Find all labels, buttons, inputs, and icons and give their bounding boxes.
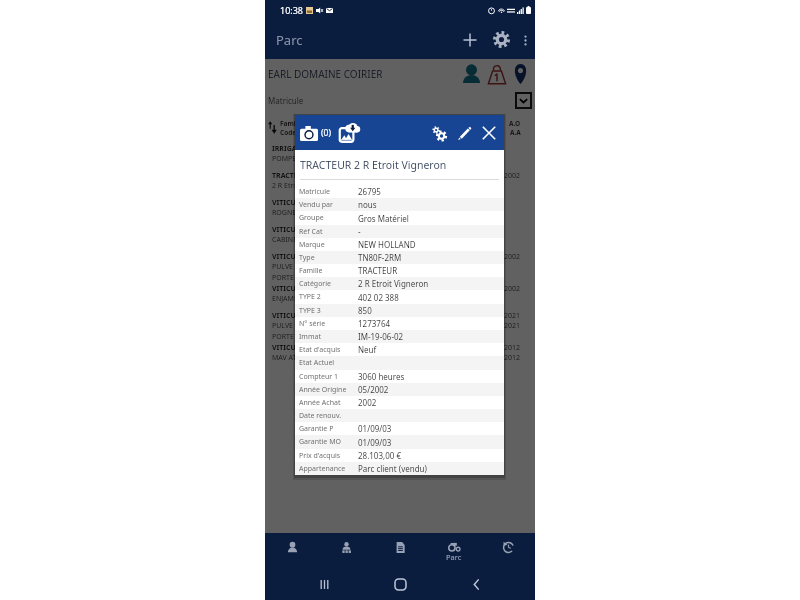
staticText: ROGNEUSE xyxy=(272,208,309,218)
button[interactable]: Client xyxy=(461,63,482,85)
staticText: Appartenance xyxy=(299,464,358,474)
button[interactable]: Back xyxy=(463,571,489,597)
staticText: Parc xyxy=(276,31,303,49)
staticText: NEW HOLLAND xyxy=(358,239,416,250)
staticText: Etat Actuel xyxy=(299,358,358,368)
staticText: IRRIGATION xyxy=(272,144,315,154)
staticText: Parc xyxy=(446,552,462,562)
button[interactable]: Equipe xyxy=(319,533,373,568)
staticText: Matricule xyxy=(299,187,358,197)
button[interactable]: Documents xyxy=(373,533,427,568)
staticText: TYPE 3 xyxy=(299,306,358,316)
staticText: TRACTEUR xyxy=(358,265,398,276)
button[interactable]: Clients xyxy=(265,533,319,568)
staticText: N° série xyxy=(299,319,358,329)
staticText: 01/09/03 xyxy=(358,437,392,448)
staticText: 2002 xyxy=(504,284,521,294)
staticText: Famille xyxy=(299,266,358,276)
staticText: Garantie P xyxy=(299,424,358,434)
button[interactable]: VITICULTURE xyxy=(272,251,521,283)
staticText: VITICULTURE xyxy=(272,311,318,321)
button[interactable]: Expand xyxy=(515,92,532,109)
button[interactable]: Close xyxy=(478,122,500,144)
staticText: Compteur 1 xyxy=(299,372,358,382)
staticText: 10:38 xyxy=(280,4,304,16)
button[interactable]: More options xyxy=(515,30,535,50)
staticText: Code xyxy=(280,128,297,137)
staticText: Matricule xyxy=(268,95,304,106)
staticText: Date renouv. xyxy=(299,411,358,421)
staticText: TN80F-2RM xyxy=(358,252,402,263)
staticText: Garantie MO xyxy=(299,437,358,447)
button[interactable]: Home xyxy=(387,571,413,597)
staticText: 850 xyxy=(358,305,372,316)
staticText: 28.103,00 € xyxy=(358,450,401,461)
staticText: 26795 xyxy=(358,186,381,197)
staticText: MAV ATT xyxy=(272,353,301,363)
staticText: Année Achat xyxy=(299,398,358,408)
staticText: nous xyxy=(358,199,377,210)
staticText: PULVE PORTE xyxy=(272,321,294,341)
button[interactable]: Recents xyxy=(311,571,337,597)
button[interactable]: Take photo xyxy=(299,123,319,143)
staticText: Neuf xyxy=(358,344,377,355)
staticText: 2021 xyxy=(504,311,521,321)
staticText: A.O xyxy=(509,119,521,128)
button[interactable]: Add xyxy=(456,26,483,53)
button[interactable]: Settings xyxy=(428,122,450,144)
staticText: Type xyxy=(299,253,358,263)
staticText: VITICULTURE xyxy=(272,252,318,262)
staticText: - xyxy=(358,226,361,237)
staticText: 1273764 xyxy=(358,318,391,329)
staticText: PULVE PORTE xyxy=(272,262,294,282)
staticText: 2 R Etroit Vigneron xyxy=(358,278,429,289)
staticText: (0) xyxy=(321,127,331,139)
staticText: VITICULTURE xyxy=(272,343,318,353)
staticText: 3060 heures xyxy=(358,371,405,382)
staticText: TRACTEUR xyxy=(272,171,308,181)
staticText: EARL DOMAINE COIRIER xyxy=(268,67,383,81)
button[interactable]: Import photo xyxy=(337,121,361,145)
staticText: 2002 xyxy=(358,397,377,408)
staticText: IM-19-06-02 xyxy=(358,331,404,342)
staticText: Gros Matériel xyxy=(358,213,409,224)
button[interactable]: VITICULTURE xyxy=(272,224,521,251)
button[interactable]: Historique xyxy=(481,533,535,568)
button[interactable]: Alerts xyxy=(486,63,507,85)
staticText: TRACTEUR 2 R Etroit Vigneron xyxy=(300,158,447,172)
staticText: VITICULTURE xyxy=(272,284,318,294)
staticText: Prix d'acquis xyxy=(299,451,358,461)
staticText: TYPE 2 xyxy=(299,292,358,302)
button[interactable]: Edit xyxy=(453,122,475,144)
staticText: Marque xyxy=(299,240,358,250)
button[interactable]: Settings xyxy=(488,26,515,53)
button[interactable]: VITICULTURE xyxy=(272,197,521,224)
staticText: CABINE xyxy=(272,235,298,245)
staticText: Réf Cat xyxy=(299,227,358,237)
staticText: Groupe xyxy=(299,213,358,223)
staticText: 2021 xyxy=(504,321,521,331)
button[interactable]: Location xyxy=(511,63,529,85)
staticText: POMPE xyxy=(272,154,297,164)
staticText: 01/09/03 xyxy=(358,423,392,434)
staticText: Parc client (vendu) xyxy=(358,463,427,474)
staticText: 2012 xyxy=(504,343,521,353)
staticText: Année Origine xyxy=(299,385,358,395)
staticText: Vendu par xyxy=(299,200,358,210)
button[interactable]: VITICULTURE xyxy=(272,283,521,310)
button[interactable]: IRRIGATION xyxy=(272,143,521,170)
staticText: Immat xyxy=(299,332,358,342)
staticText: VITICULTURE xyxy=(272,198,318,208)
staticText: VITICULTURE xyxy=(272,225,318,235)
button[interactable]: VITICULTURE xyxy=(272,310,521,342)
staticText: 2002 xyxy=(504,252,521,262)
button[interactable]: TRACTEUR xyxy=(272,170,521,197)
staticText: 2 R Etroit Vigneron xyxy=(272,181,334,191)
staticText: 2012 xyxy=(504,353,521,363)
staticText: 05/2002 xyxy=(358,384,389,395)
staticText: 2002 xyxy=(504,171,521,181)
staticText: A.A xyxy=(510,128,521,137)
button[interactable]: Parc xyxy=(427,533,481,568)
staticText: Catégorie xyxy=(299,279,358,289)
button[interactable]: VITICULTURE xyxy=(272,342,521,369)
